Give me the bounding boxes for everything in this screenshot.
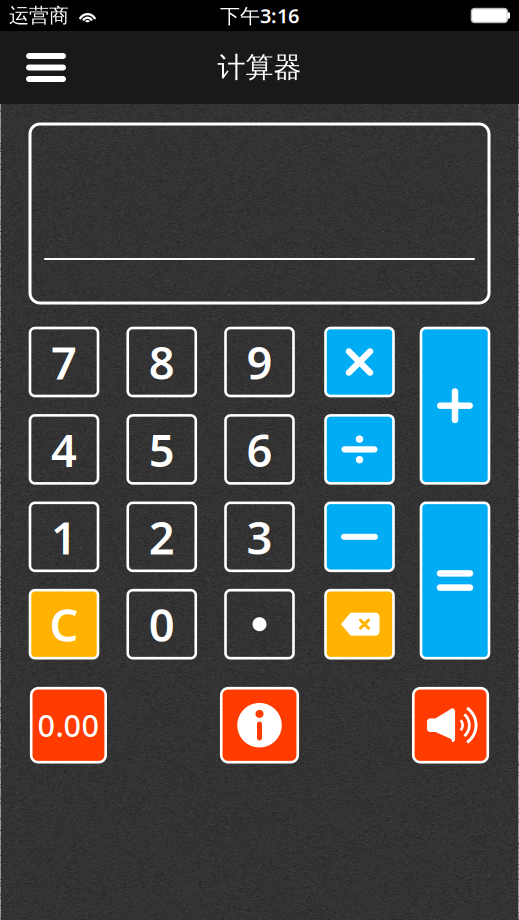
- button[interactable]: Delete: [325, 590, 393, 658]
- staticText: C: [49, 594, 78, 654]
- button[interactable]: Result: [31, 688, 106, 762]
- staticText: 9: [246, 332, 272, 392]
- button[interactable]: Divide: [325, 415, 393, 483]
- staticText: 0.00: [37, 705, 99, 745]
- staticText: 8: [149, 332, 175, 392]
- staticText: 4: [51, 419, 77, 479]
- button[interactable]: Subtract: [325, 503, 393, 571]
- button[interactable]: Decimal point: [225, 590, 293, 658]
- staticText: 5: [149, 419, 175, 479]
- staticText: 7: [51, 332, 77, 392]
- staticText: 计算器: [217, 50, 301, 85]
- staticText: 运营商: [9, 3, 69, 28]
- staticText: 0: [149, 594, 175, 654]
- button[interactable]: 1: [30, 503, 98, 571]
- button[interactable]: Sound: [413, 688, 488, 762]
- button[interactable]: 0: [128, 590, 196, 658]
- button[interactable]: 7: [30, 328, 98, 396]
- staticText: 3: [246, 507, 272, 567]
- button[interactable]: Menu: [15, 41, 77, 93]
- button[interactable]: 8: [128, 328, 196, 396]
- button[interactable]: Info: [221, 688, 298, 762]
- button[interactable]: 4: [30, 415, 98, 483]
- button[interactable]: Add: [421, 328, 489, 483]
- staticText: 2: [149, 507, 175, 567]
- button[interactable]: Clear: [30, 590, 98, 658]
- button[interactable]: 3: [225, 503, 293, 571]
- button[interactable]: Equals: [421, 503, 489, 658]
- staticText: 1: [51, 507, 77, 567]
- button[interactable]: 2: [128, 503, 196, 571]
- staticText: 下午3:16: [220, 2, 299, 29]
- button[interactable]: 5: [128, 415, 196, 483]
- button[interactable]: Multiply: [325, 328, 393, 396]
- button[interactable]: 6: [225, 415, 293, 483]
- button[interactable]: 9: [225, 328, 293, 396]
- staticText: 6: [246, 419, 272, 479]
